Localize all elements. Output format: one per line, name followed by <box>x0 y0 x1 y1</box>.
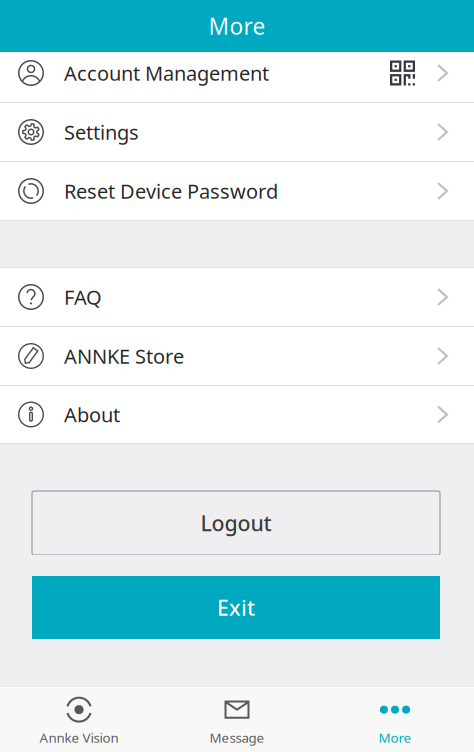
staticText: More <box>378 729 411 746</box>
button[interactable]: Message <box>158 686 316 752</box>
staticText: Annke Vision <box>39 729 118 746</box>
button[interactable]: Annke Vision <box>0 686 158 752</box>
staticText: Message <box>209 729 264 746</box>
staticText: About <box>64 401 120 428</box>
button[interactable]: FAQ <box>0 268 474 326</box>
button[interactable]: Account Management <box>0 52 474 102</box>
button[interactable]: Logout <box>32 491 440 555</box>
staticText: More <box>208 11 265 41</box>
button[interactable]: More <box>316 686 474 752</box>
button[interactable]: ANNKE Store <box>0 327 474 385</box>
staticText: Settings <box>64 119 139 145</box>
staticText: ANNKE Store <box>64 343 184 369</box>
button[interactable]: Settings <box>0 103 474 161</box>
button[interactable]: Exit <box>32 576 440 639</box>
staticText: Exit <box>217 593 255 622</box>
button[interactable]: Reset Device Password <box>0 162 474 220</box>
staticText: Reset Device Password <box>64 178 278 204</box>
button[interactable]: About <box>0 386 474 443</box>
staticText: Account Management <box>64 60 269 86</box>
staticText: FAQ <box>64 284 102 310</box>
staticText: Logout <box>200 509 271 537</box>
